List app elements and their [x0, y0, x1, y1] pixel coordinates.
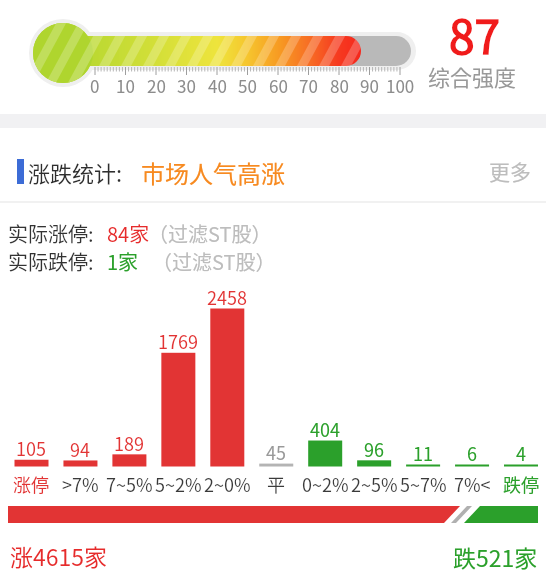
staticText: 0~2%	[302, 471, 349, 497]
button[interactable]: 更多	[480, 152, 540, 192]
staticText: 实际涨停:	[8, 219, 94, 248]
staticText: 5~7%	[400, 471, 447, 497]
staticText: 涨跌统计:	[28, 156, 123, 188]
staticText: 7~5%	[106, 471, 153, 497]
staticText: 20	[147, 73, 166, 98]
staticText: 30	[177, 73, 196, 98]
staticText: 94	[70, 436, 90, 462]
staticText: 1家	[107, 247, 139, 276]
staticText: 6	[467, 440, 477, 466]
staticText: 11	[413, 440, 433, 466]
staticText: 市场人气高涨	[141, 155, 285, 190]
staticText: 87	[449, 1, 501, 68]
staticText: 4	[516, 440, 526, 466]
staticText: 70	[299, 73, 318, 98]
staticText: 平	[267, 471, 285, 497]
staticText: 涨停	[13, 471, 49, 497]
staticText: 2~5%	[351, 471, 398, 497]
staticText: （过滤ST股）	[152, 247, 276, 276]
staticText: 189	[114, 430, 144, 456]
staticText: 40	[208, 73, 227, 98]
staticText: 5~2%	[155, 471, 202, 497]
staticText: 0	[90, 73, 100, 98]
staticText: 2458	[207, 284, 247, 310]
staticText: 10	[116, 73, 135, 98]
staticText: 7%<	[454, 471, 491, 497]
staticText: 实际跌停:	[8, 247, 94, 276]
staticText: 96	[364, 436, 384, 462]
staticText: 更多	[489, 156, 531, 186]
staticText: 50	[238, 73, 257, 98]
staticText: 404	[310, 416, 340, 442]
staticText: 1769	[158, 328, 198, 354]
staticText: 45	[266, 439, 286, 465]
staticText: 综合强度	[428, 60, 517, 92]
staticText: 90	[360, 73, 379, 98]
staticText: 跌521家	[453, 540, 538, 573]
staticText: >7%	[62, 471, 99, 497]
staticText: 84家	[107, 219, 150, 248]
staticText: 105	[16, 435, 46, 461]
staticText: 2~0%	[204, 471, 251, 497]
staticText: （过滤ST股）	[148, 219, 272, 248]
staticText: 跌停	[503, 471, 539, 497]
staticText: 60	[269, 73, 288, 98]
staticText: 80	[330, 73, 349, 98]
staticText: 100	[386, 73, 415, 98]
staticText: 涨4615家	[10, 539, 108, 572]
